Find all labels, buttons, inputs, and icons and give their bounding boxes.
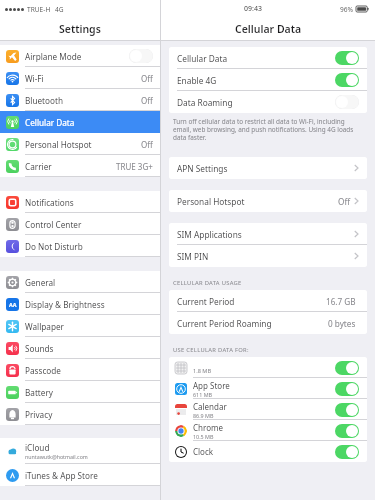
- button[interactable]: SIM Applications: [169, 223, 367, 245]
- staticText: 09:43: [244, 4, 262, 14]
- staticText: Cellular Data: [177, 53, 228, 64]
- staticText: App Store: [193, 380, 230, 391]
- button[interactable]: App Store: [169, 378, 367, 399]
- button[interactable]: Chrome: [169, 420, 367, 441]
- button[interactable]: Calendar: [169, 399, 367, 420]
- button[interactable]: Carrier: [0, 155, 160, 177]
- staticText: CELLULAR DATA USAGE: [173, 279, 242, 287]
- button[interactable]: Airplane Mode: [0, 45, 160, 67]
- button[interactable]: On: [335, 382, 359, 396]
- button[interactable]: AA: [0, 293, 160, 315]
- button[interactable]: Off: [335, 95, 359, 109]
- staticText: Turn off cellular data to restrict all d…: [173, 117, 363, 142]
- staticText: Chrome: [193, 422, 223, 433]
- staticText: Sounds: [25, 343, 54, 354]
- staticText: Personal Hotspot: [177, 196, 245, 207]
- staticText: 611 MB: [193, 391, 213, 398]
- staticText: Display & Brightness: [25, 299, 105, 310]
- staticText: Calendar: [193, 401, 227, 412]
- staticText: Off: [141, 95, 153, 106]
- staticText: Control Center: [25, 219, 82, 230]
- button[interactable]: Battery: [0, 381, 160, 403]
- button[interactable]: General: [0, 271, 160, 293]
- staticText: SIM Applications: [177, 229, 242, 240]
- button[interactable]: SIM PIN: [169, 245, 367, 267]
- staticText: Data Roaming: [177, 97, 233, 108]
- staticText: APN Settings: [177, 163, 228, 174]
- button[interactable]: Do Not Disturb: [0, 235, 160, 257]
- staticText: Passcode: [25, 365, 61, 376]
- button[interactable]: Off: [129, 49, 153, 63]
- button[interactable]: Current Period Roaming: [169, 312, 367, 334]
- staticText: Off: [141, 73, 153, 84]
- button[interactable]: On: [335, 73, 359, 87]
- staticText: 16.7 GB: [326, 296, 356, 307]
- button[interactable]: APN Settings: [169, 157, 367, 179]
- staticText: Enable 4G: [177, 75, 217, 86]
- button[interactable]: On: [335, 424, 359, 438]
- staticText: Bluetooth: [25, 95, 63, 106]
- staticText: Carrier: [25, 161, 52, 172]
- staticText: Current Period: [177, 296, 235, 307]
- staticText: USE CELLULAR DATA FOR:: [173, 346, 249, 354]
- button[interactable]: Enable 4G: [169, 69, 367, 91]
- button[interactable]: On: [335, 403, 359, 417]
- staticText: Privacy: [25, 409, 53, 420]
- staticText: iTunes & App Store: [25, 470, 98, 481]
- button[interactable]: Wi-Fi: [0, 67, 160, 89]
- staticText: Off: [338, 196, 351, 207]
- staticText: Cellular Data: [235, 22, 302, 36]
- button[interactable]: On: [335, 361, 359, 375]
- button[interactable]: Privacy: [0, 403, 160, 425]
- button[interactable]: On: [335, 51, 359, 65]
- staticText: General: [25, 277, 56, 288]
- staticText: 0 bytes: [328, 318, 356, 329]
- button[interactable]: Bluetooth: [0, 89, 160, 111]
- button[interactable]: Wallpaper: [0, 315, 160, 337]
- button[interactable]: Current Period: [169, 290, 367, 312]
- staticText: Do Not Disturb: [25, 241, 83, 252]
- staticText: TRUE 3G+: [116, 161, 153, 172]
- staticText: Wallpaper: [25, 321, 64, 332]
- staticText: Airplane Mode: [25, 51, 82, 62]
- button[interactable]: Notifications: [0, 191, 160, 213]
- staticText: Off: [141, 139, 153, 150]
- staticText: Battery: [25, 387, 54, 398]
- button[interactable]: Cellular Data: [0, 111, 160, 133]
- staticText: nuntawutk@hotmail.com: [25, 453, 88, 460]
- staticText: Personal Hotspot: [25, 139, 92, 150]
- staticText: Clock: [193, 446, 214, 457]
- button[interactable]: iTunes & App Store: [0, 464, 160, 486]
- staticText: 1.8 MB: [193, 367, 212, 375]
- button[interactable]: Clock: [169, 441, 367, 462]
- button[interactable]: iCloud: [0, 438, 160, 464]
- staticText: Cellular Data: [25, 117, 75, 128]
- staticText: Current Period Roaming: [177, 318, 272, 329]
- button[interactable]: Sounds: [0, 337, 160, 359]
- button[interactable]: Passcode: [0, 359, 160, 381]
- staticText: SIM PIN: [177, 251, 209, 262]
- button[interactable]: On: [335, 445, 359, 459]
- staticText: TRUE-H: [27, 5, 51, 14]
- button[interactable]: Data Roaming: [169, 91, 367, 113]
- button[interactable]: Personal Hotspot: [0, 133, 160, 155]
- staticText: Wi-Fi: [25, 73, 44, 84]
- staticText: AA: [9, 301, 17, 308]
- staticText: iCloud: [25, 442, 50, 453]
- button[interactable]: 1.8 MB: [169, 357, 367, 378]
- button[interactable]: Personal Hotspot: [169, 190, 367, 212]
- staticText: 96%: [340, 5, 354, 14]
- staticText: 10.5 MB: [193, 433, 214, 440]
- staticText: Settings: [59, 22, 101, 36]
- button[interactable]: Control Center: [0, 213, 160, 235]
- staticText: 86.9 MB: [193, 412, 214, 419]
- staticText: 4G: [55, 5, 64, 14]
- button[interactable]: Cellular Data: [169, 47, 367, 69]
- staticText: Notifications: [25, 197, 74, 208]
